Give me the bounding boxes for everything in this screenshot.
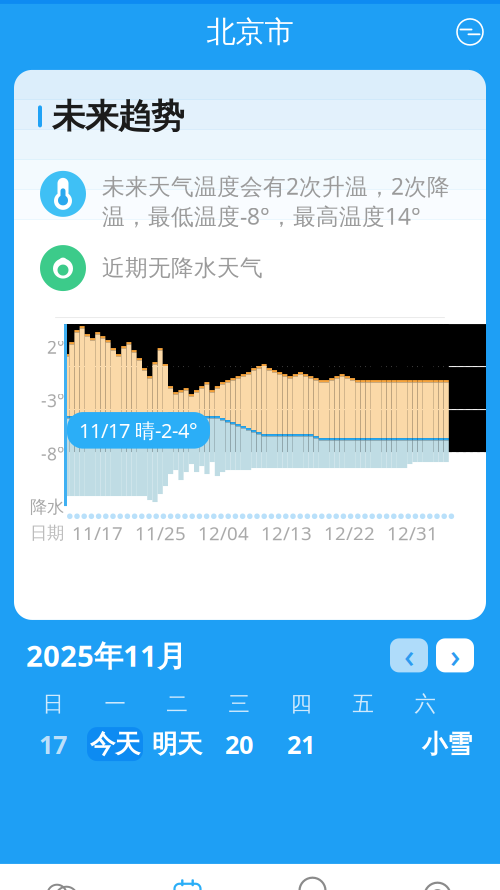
staticText: 20 [225, 727, 253, 761]
staticText: 11/25 [135, 521, 186, 545]
staticText: 降水 [30, 496, 64, 518]
staticText: 六 [414, 691, 435, 717]
staticText: 小雪 [422, 728, 472, 760]
staticText: 21 [287, 727, 315, 761]
staticText: 二 [166, 691, 187, 717]
button[interactable]: 听天气 [250, 876, 375, 890]
staticText: 12/04 [198, 521, 249, 545]
staticText: 近期无降水天气 [102, 254, 263, 282]
staticText: -8° [41, 442, 64, 465]
staticText: 17 [39, 727, 67, 761]
staticText: 日期 [30, 522, 64, 544]
staticText: 11/17 [72, 521, 123, 545]
staticText: ‹ [404, 634, 414, 677]
button[interactable]: 切换单位 [448, 10, 492, 54]
staticText: 北京市 [206, 14, 293, 50]
staticText: 2° [47, 336, 64, 359]
staticText: 未来趋势 [52, 96, 184, 137]
button[interactable]: 综合预报 [0, 876, 125, 890]
button[interactable]: 45日天气 [125, 876, 250, 890]
button[interactable]: 设置 [375, 876, 500, 890]
staticText: 日 [42, 691, 63, 717]
staticText: 未来天气温度会有2次升温，2次降温，最低温度-8°，最高温度14° [102, 171, 450, 231]
staticText: 四 [290, 691, 311, 717]
staticText: 五 [352, 691, 373, 717]
staticText: 11/17 晴-2-4° [79, 417, 198, 444]
staticText: 今天 [90, 728, 140, 760]
staticText: 12/22 [324, 521, 375, 545]
staticText: 2025年11月 [26, 636, 186, 675]
staticText: › [450, 634, 460, 677]
button[interactable]: 上个月 [390, 638, 428, 672]
button[interactable]: 下个月 [436, 638, 474, 672]
staticText: 明天 [152, 728, 202, 760]
staticText: -3° [41, 389, 64, 412]
staticText: 三 [228, 691, 249, 717]
staticText: 一 [104, 691, 125, 717]
staticText: 12/31 [387, 521, 438, 545]
staticText: 12/13 [261, 521, 312, 545]
